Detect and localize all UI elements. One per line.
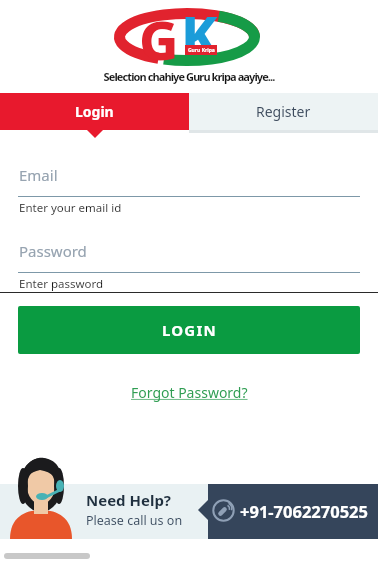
staticText: Email [19, 165, 58, 185]
button[interactable]: Password [0, 236, 378, 292]
staticText: Login [75, 102, 114, 121]
staticText: Register [256, 102, 311, 121]
staticText: G [139, 2, 179, 76]
button[interactable]: LOGIN [18, 306, 360, 354]
staticText: Please call us on [86, 512, 183, 529]
staticText: Enter password [19, 276, 104, 292]
staticText: LOGIN [162, 320, 217, 340]
staticText: Forgot Password? [131, 383, 248, 402]
staticText: +91-7062270525 [240, 500, 368, 522]
button[interactable]: Register [189, 93, 378, 130]
staticText: Enter your email id [19, 200, 122, 216]
button[interactable]: Forgot Password? [131, 383, 248, 402]
staticText: Guru Kripa [188, 47, 215, 54]
staticText: Need Help? [86, 490, 172, 510]
staticText: Selection chahiye Guru kripa aayiye... [0, 69, 378, 84]
button[interactable]: Email [0, 160, 378, 216]
button[interactable]: Login [0, 93, 189, 130]
staticText: K [181, 0, 218, 71]
button[interactable] [208, 484, 378, 539]
staticText: Password [19, 241, 87, 261]
